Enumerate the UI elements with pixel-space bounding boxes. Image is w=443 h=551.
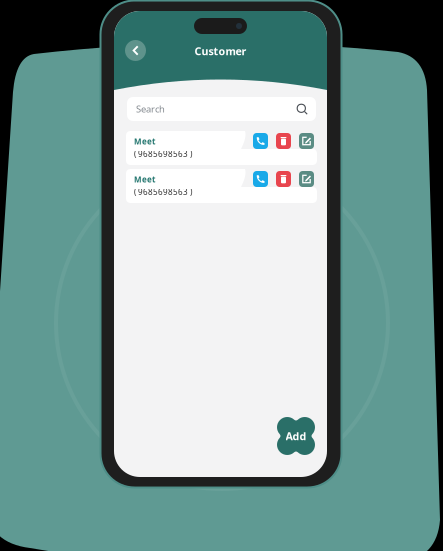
staticText: ( 9685698563 ): [134, 149, 192, 159]
button[interactable]: Meet: [126, 131, 317, 165]
button[interactable]: Edit: [299, 171, 314, 187]
staticText: Search: [136, 103, 165, 115]
staticText: Add: [285, 429, 306, 443]
button[interactable]: Add customer: [277, 417, 315, 455]
staticText: ( 9685698563 ): [134, 187, 192, 197]
button[interactable]: Call: [253, 133, 268, 149]
staticText: Meet: [134, 136, 155, 147]
button[interactable]: Search: [127, 97, 316, 121]
button[interactable]: Edit: [299, 133, 314, 149]
staticText: Customer: [194, 44, 246, 58]
button[interactable]: Delete: [276, 133, 291, 149]
button[interactable]: Back: [125, 40, 146, 61]
button[interactable]: Delete: [276, 171, 291, 187]
button[interactable]: Call: [253, 171, 268, 187]
button[interactable]: Meet: [126, 169, 317, 203]
staticText: Meet: [134, 174, 155, 185]
